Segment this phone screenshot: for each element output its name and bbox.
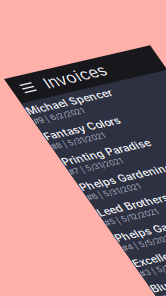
button[interactable]: Fantasy Colors: [4, 140, 154, 171]
button[interactable]: Michael Spencer: [4, 109, 154, 140]
button[interactable]: Printing Paradise: [4, 171, 154, 202]
staticText: Fantasy Colors: [4, 144, 81, 157]
staticText: Phelps Gardening: [4, 206, 98, 219]
staticText: Michael Spencer: [4, 113, 91, 126]
staticText: Printing Paradise: [4, 175, 94, 188]
button[interactable]: Phelps Gardening: [4, 202, 154, 233]
staticText: Invoices: [37, 84, 99, 104]
button[interactable]: Phelps Gardening: [4, 264, 154, 295]
button[interactable]: Leed Brothers: [4, 233, 154, 264]
staticText: #9 | 6/2/2021: [4, 127, 55, 136]
button[interactable]: Menu: [13, 87, 27, 101]
